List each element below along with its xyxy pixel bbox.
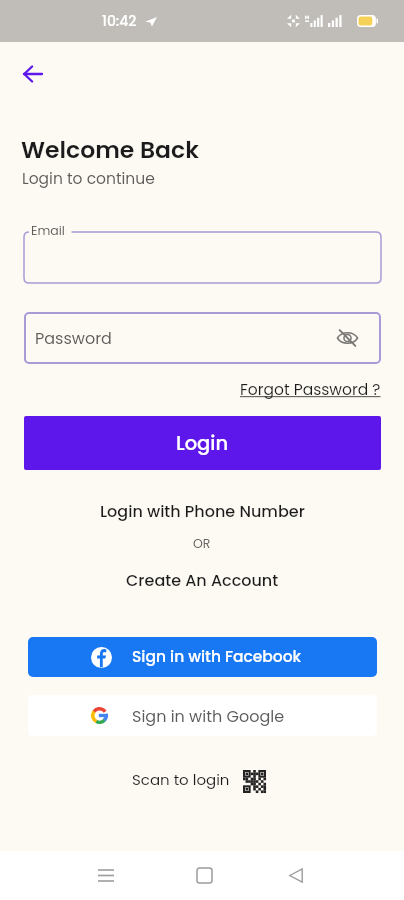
staticText: Welcome Back [21, 133, 199, 166]
button[interactable]: Create An Account [120, 566, 285, 594]
button[interactable]: Scan to login [0, 768, 401, 791]
button[interactable]: Login with Phone Number [94, 497, 311, 525]
button[interactable]: Sign in with Facebook [28, 637, 377, 677]
button[interactable]: OR [187, 532, 217, 555]
staticText: Email [31, 222, 65, 239]
button[interactable]: Toggle password visibility [330, 321, 364, 355]
button[interactable]: Home [180, 851, 228, 900]
staticText: Password [35, 327, 112, 349]
staticText: Login with Phone Number [100, 500, 305, 522]
staticText: Create An Account [126, 569, 279, 591]
button[interactable]: Sign in with Google [28, 695, 377, 736]
staticText: Sign in with Google [132, 705, 285, 727]
button[interactable]: Recent apps [82, 851, 130, 900]
staticText: Login [176, 430, 229, 457]
staticText: OR [193, 535, 211, 552]
button[interactable]: Login [24, 416, 381, 470]
staticText: Login to continue [22, 168, 155, 190]
staticText: Scan to login [132, 769, 230, 790]
button[interactable]: Back [272, 851, 320, 900]
button[interactable]: Back [12, 53, 53, 94]
staticText: Sign in with Facebook [132, 646, 302, 668]
button[interactable]: Forgot Password ? [240, 379, 381, 401]
staticText: 10:42 [102, 11, 137, 31]
